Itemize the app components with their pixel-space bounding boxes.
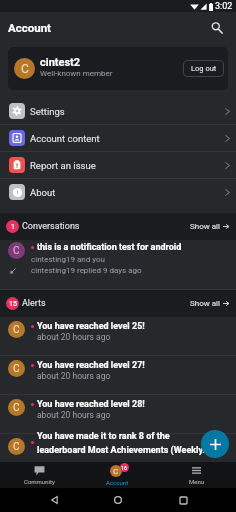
- staticText: C: [113, 467, 119, 476]
- staticText: 15: [9, 300, 17, 308]
- staticText: C: [21, 62, 29, 76]
- staticText: Account content: [30, 133, 225, 144]
- staticText: C: [13, 245, 20, 257]
- staticText: C: [13, 402, 20, 414]
- staticText: Community: [24, 478, 55, 485]
- staticText: Account: [106, 479, 129, 486]
- button[interactable]: Menu: [157, 462, 236, 488]
- button[interactable]: Show all: [190, 222, 229, 231]
- button[interactable]: Show all: [190, 299, 229, 308]
- staticText: You have reached level 25!: [37, 321, 145, 332]
- staticText: about 20 hours ago: [37, 332, 111, 342]
- staticText: Account: [8, 21, 51, 34]
- staticText: C: [13, 324, 20, 336]
- staticText: C: [13, 363, 20, 375]
- button[interactable]: Search: [206, 17, 228, 39]
- button[interactable]: Recents: [172, 489, 194, 511]
- staticText: 1: [11, 223, 15, 231]
- staticText: 3:02: [215, 1, 233, 12]
- staticText: cintesting19 replied 9 days ago: [31, 266, 142, 275]
- staticText: Well-known member: [40, 69, 113, 78]
- button[interactable]: C: [0, 356, 236, 394]
- staticText: about 20 hours ago: [37, 371, 111, 381]
- staticText: 16: [121, 465, 128, 471]
- button[interactable]: About: [0, 179, 236, 205]
- button[interactable]: Account content: [0, 125, 236, 151]
- button[interactable]: C: [0, 240, 236, 289]
- staticText: About: [30, 187, 225, 198]
- button[interactable]: C: [0, 395, 236, 433]
- button[interactable]: C: [78, 462, 157, 488]
- button[interactable]: Settings: [0, 98, 236, 124]
- staticText: C: [13, 441, 20, 453]
- button[interactable]: C: [0, 317, 236, 355]
- button[interactable]: Home: [107, 489, 129, 511]
- staticText: Show all: [190, 299, 220, 308]
- button[interactable]: C: [0, 434, 236, 462]
- staticText: Show all: [190, 222, 220, 231]
- staticText: You have reached level 27!: [37, 360, 145, 371]
- staticText: Conversations: [22, 221, 190, 232]
- button[interactable]: Log out: [183, 60, 224, 77]
- staticText: Menu: [189, 478, 205, 485]
- button[interactable]: Report an issue: [0, 152, 236, 178]
- staticText: Settings: [30, 106, 225, 117]
- staticText: cintest2: [40, 56, 81, 69]
- staticText: this is a notification test for android: [37, 242, 182, 253]
- button[interactable]: Create: [201, 430, 229, 458]
- button[interactable]: C: [8, 47, 228, 90]
- staticText: You have reached level 28!: [37, 399, 145, 410]
- staticText: cintesting19 and you: [31, 255, 105, 264]
- button[interactable]: Community: [0, 462, 78, 488]
- button[interactable]: Back: [43, 489, 65, 511]
- staticText: Log out: [191, 64, 217, 73]
- staticText: about 20 hours ago: [37, 410, 111, 420]
- staticText: You have made it to rank 8 of the leader…: [37, 431, 214, 455]
- staticText: Alerts: [22, 298, 190, 309]
- staticText: Report an issue: [30, 160, 225, 171]
